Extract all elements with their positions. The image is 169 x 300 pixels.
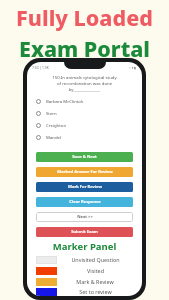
staticText: Marked Answer For Review [57,169,113,175]
staticText: Unvisited Question [71,256,120,263]
button[interactable]: Mandel [36,131,133,143]
button[interactable]: Save & Next [36,152,133,162]
staticText: Mark & Review [76,278,114,285]
button[interactable]: Submit Exam [36,227,133,237]
staticText: Set to review [79,288,112,295]
button[interactable]: Barbara McClintok [36,95,133,107]
staticText: Visited [87,267,104,274]
staticText: Clear Response [69,199,101,205]
button[interactable]: Mark & Review [36,276,133,287]
button[interactable]: Marked Answer For Review [36,167,133,177]
staticText: Stern [46,110,57,116]
button[interactable]: Mark For Review [36,182,133,192]
staticText: Barbara McClintok [46,98,84,104]
staticText: Next >> [77,214,93,220]
staticText: 150.In animals cytological study of reco… [36,74,133,92]
button[interactable]: Unvisited Question [36,254,133,265]
staticText: Mandel [46,134,62,140]
button[interactable]: Visited [36,265,133,276]
staticText: Exam Portal [19,34,150,63]
staticText: Save & Next [72,154,97,160]
staticText: Fully Loaded [16,3,153,32]
staticText: Mark For Review [68,184,102,190]
staticText: ⌁ ▾ ▮ [129,65,137,69]
staticText: 7:03 | 1.9K [32,65,49,69]
button[interactable]: Stern [36,107,133,119]
button[interactable]: Clear Response [36,197,133,207]
staticText: Submit Exam [71,229,98,235]
staticText: Creighton [46,122,67,128]
button[interactable]: Next >> [36,212,133,222]
staticText: Marker Panel [36,240,133,253]
button[interactable]: Creighton [36,119,133,131]
button[interactable]: Set to review [36,287,133,296]
